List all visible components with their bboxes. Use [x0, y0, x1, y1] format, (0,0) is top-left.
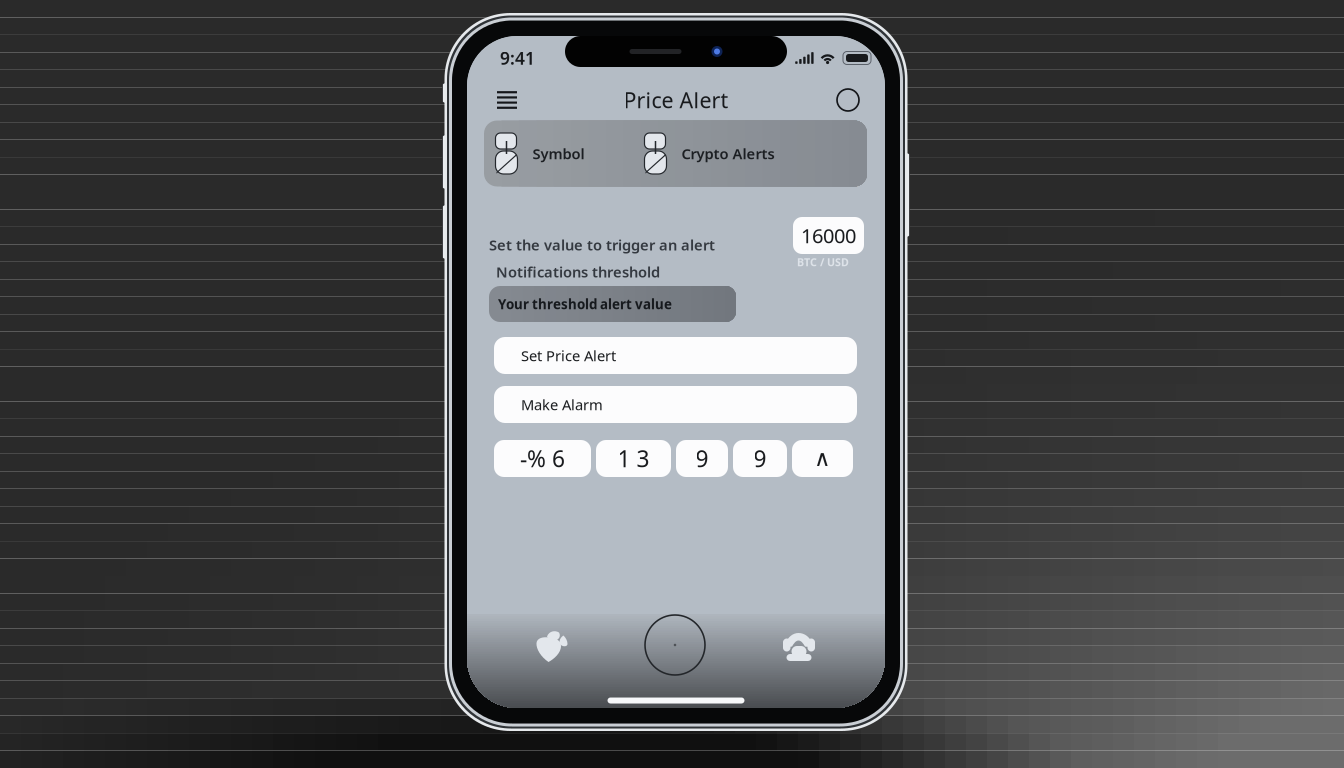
button[interactable]: 9 [733, 440, 787, 477]
button[interactable]: Symbol [495, 133, 584, 174]
staticText: 9 [753, 443, 766, 473]
staticText: 9:41 [500, 46, 535, 69]
staticText: Your threshold alert value [498, 295, 672, 313]
button[interactable]: Crypto Alerts [644, 133, 774, 174]
staticText: 16000 [801, 222, 856, 249]
button[interactable]: Make Alarm [494, 386, 857, 423]
staticText: Symbol [532, 144, 584, 163]
staticText: 1 3 [617, 443, 649, 473]
staticText: Price Alert [623, 86, 728, 114]
button[interactable]: Your threshold alert value [489, 286, 736, 322]
button[interactable]: Profile [761, 614, 837, 676]
button[interactable]: Set Price Alert [494, 337, 857, 374]
button[interactable]: -% 6 [494, 440, 591, 477]
staticText: ∧ [814, 446, 831, 471]
staticText: -% 6 [520, 443, 565, 473]
button[interactable]: ∧ [792, 440, 853, 477]
staticText: BTC / USD [797, 255, 849, 269]
button[interactable]: 9 [676, 440, 728, 477]
staticText: Set Price Alert [521, 346, 616, 365]
staticText: Crypto Alerts [681, 144, 774, 163]
staticText: 9 [695, 443, 708, 473]
button[interactable]: Alerts [513, 614, 589, 676]
button[interactable]: Add alert [639, 614, 711, 676]
button[interactable]: Account [827, 79, 869, 121]
button[interactable]: Menu [486, 79, 528, 121]
staticText: Notifications threshold [496, 262, 660, 281]
staticText: Set the value to trigger an alert [489, 235, 715, 254]
button[interactable]: 1 3 [596, 440, 671, 477]
staticText: Make Alarm [521, 395, 603, 414]
